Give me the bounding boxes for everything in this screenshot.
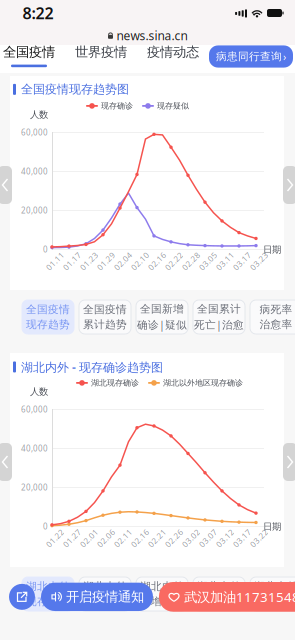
- staticText: 累计确诊: [83, 595, 127, 608]
- button[interactable]: Share: [9, 584, 35, 610]
- staticText: 治愈率: [259, 318, 292, 331]
- staticText: 湖北现存确诊: [91, 378, 139, 388]
- button[interactable]: 湖北内外: [22, 577, 74, 611]
- staticText: 治愈率: [259, 595, 292, 608]
- staticText: 02.06: [95, 533, 117, 543]
- staticText: 0: [43, 244, 48, 255]
- staticText: 全国疫情: [26, 303, 70, 316]
- staticText: 01.22: [44, 533, 66, 543]
- staticText: 01.27: [61, 533, 83, 543]
- staticText: 湖北内外 - 现存确诊趋势图: [21, 359, 163, 375]
- button[interactable]: 世界疫情: [65, 45, 137, 73]
- button[interactable]: 湖北内外: [79, 577, 131, 611]
- button[interactable]: Previous chart: [0, 443, 12, 481]
- staticText: 现存趋势: [26, 318, 70, 331]
- staticText: 确诊|疑似: [137, 317, 187, 332]
- button[interactable]: 湖北内外: [193, 577, 245, 611]
- staticText: 开启疫情通知: [66, 589, 144, 605]
- button[interactable]: 全国新增: [136, 300, 188, 334]
- staticText: 湖北内外: [197, 580, 241, 593]
- staticText: 03.07: [197, 533, 219, 543]
- button[interactable]: 全国累计: [193, 300, 245, 334]
- staticText: 03.11: [214, 256, 236, 266]
- button[interactable]: 武汉加油117315485次: [159, 582, 295, 612]
- staticText: 死亡治愈: [197, 595, 241, 608]
- staticText: 02.16: [129, 533, 151, 543]
- staticText: 现存确诊: [101, 101, 133, 111]
- staticText: 01.23: [78, 256, 100, 266]
- staticText: 60,000: [21, 404, 48, 415]
- staticText: 疫情动态: [147, 44, 199, 60]
- staticText: ›: [283, 49, 286, 64]
- staticText: 20,000: [21, 482, 48, 493]
- staticText: 湖北以外地区现存确诊: [163, 378, 243, 388]
- button[interactable]: 疫情动态: [137, 45, 209, 73]
- button[interactable]: 全国疫情: [22, 300, 74, 334]
- staticText: 全国疫情现存趋势图: [21, 82, 129, 97]
- staticText: 湖北内外: [26, 580, 70, 593]
- staticText: 02.11: [112, 533, 134, 543]
- staticText: 湖北内外: [83, 580, 127, 593]
- staticText: 20,000: [21, 205, 48, 216]
- staticText: 湖北内外: [254, 580, 295, 593]
- staticText: 日期: [263, 244, 281, 255]
- button[interactable]: 病死率: [250, 300, 295, 334]
- staticText: 03.22: [248, 533, 270, 543]
- button[interactable]: 开启疫情通知: [41, 583, 153, 611]
- staticText: 病患同行查询: [216, 50, 282, 63]
- staticText: 03.23: [248, 256, 270, 266]
- button[interactable]: 湖北内外: [250, 577, 295, 611]
- staticText: 40,000: [21, 166, 48, 177]
- staticText: 02.28: [180, 256, 202, 266]
- staticText: 全国累计: [197, 302, 241, 315]
- staticText: 湖北内外: [140, 580, 184, 593]
- staticText: 人数: [30, 109, 48, 120]
- staticText: 03.12: [214, 533, 236, 543]
- staticText: 02.22: [163, 256, 185, 266]
- staticText: 02.01: [78, 533, 100, 543]
- staticText: 新增确诊: [140, 595, 184, 608]
- button[interactable]: 全国疫情: [0, 45, 65, 73]
- staticText: 现存确诊: [26, 595, 70, 608]
- button[interactable]: Next chart: [283, 166, 295, 204]
- staticText: 世界疫情: [75, 44, 127, 60]
- staticText: 武汉加油117315485次: [184, 588, 295, 606]
- staticText: 02.26: [163, 533, 185, 543]
- staticText: 全国新增: [140, 302, 184, 315]
- staticText: 01.11: [44, 256, 66, 266]
- button[interactable]: 全国疫情: [79, 300, 131, 334]
- staticText: 60,000: [21, 127, 48, 138]
- staticText: 02.10: [129, 256, 151, 266]
- staticText: news.sina.cn: [116, 27, 187, 43]
- button[interactable]: Previous chart: [0, 166, 12, 204]
- button[interactable]: 湖北内外: [136, 577, 188, 611]
- staticText: 人数: [30, 386, 48, 397]
- staticText: 03.02: [180, 533, 202, 543]
- staticText: 8:22: [22, 2, 53, 24]
- staticText: 0: [43, 521, 48, 532]
- staticText: 全国疫情: [83, 303, 127, 316]
- staticText: 01.29: [95, 256, 117, 266]
- staticText: 03.17: [231, 533, 253, 543]
- staticText: 01.17: [61, 256, 83, 266]
- staticText: 现存疑似: [157, 101, 189, 111]
- staticText: 02.21: [146, 533, 168, 543]
- staticText: 病死率: [259, 303, 292, 316]
- button[interactable]: Next chart: [283, 443, 295, 481]
- staticText: 02.04: [112, 256, 134, 266]
- staticText: 累计趋势: [83, 318, 127, 331]
- staticText: 日期: [263, 521, 281, 532]
- staticText: 02.16: [146, 256, 168, 266]
- staticText: 03.05: [197, 256, 219, 266]
- staticText: 40,000: [21, 443, 48, 454]
- staticText: 全国疫情: [3, 44, 55, 60]
- staticText: 03.17: [231, 256, 253, 266]
- staticText: 死亡|治愈: [194, 317, 244, 332]
- button[interactable]: 病患同行查询: [209, 45, 293, 68]
